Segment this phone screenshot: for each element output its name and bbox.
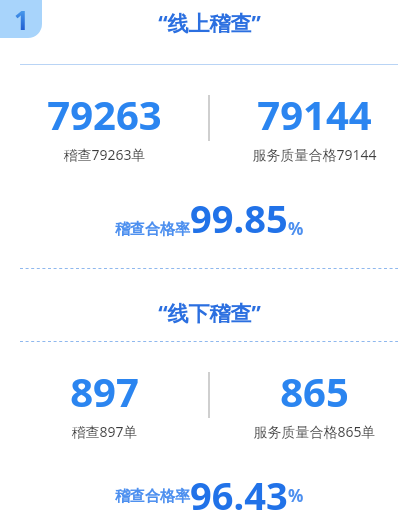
staticText: % — [288, 217, 304, 240]
button[interactable]: Section 1 — [0, 0, 42, 38]
staticText: 897 — [70, 364, 139, 418]
button[interactable]: 79263 — [0, 87, 208, 164]
button[interactable]: 897 — [0, 364, 208, 441]
staticText: % — [288, 484, 304, 507]
staticText: 79263 — [47, 87, 162, 141]
staticText: 稽查897单 — [71, 422, 138, 441]
staticText: “线下稽查” — [158, 299, 261, 328]
button[interactable]: 79144 — [210, 87, 418, 164]
staticText: 服务质量合格865单 — [253, 422, 376, 441]
button[interactable]: 865 — [210, 364, 418, 441]
button[interactable]: 稽查合格率 — [0, 469, 418, 511]
staticText: 96.43 — [190, 469, 288, 511]
staticText: 稽查79263单 — [63, 145, 146, 164]
staticText: 99.85 — [190, 192, 288, 244]
staticText: “线上稽查” — [158, 9, 261, 38]
staticText: 稽查合格率 — [115, 487, 190, 506]
staticText: 服务质量合格79144 — [252, 145, 377, 164]
staticText: 865 — [280, 364, 349, 418]
staticText: 1 — [14, 2, 29, 37]
staticText: 稽查合格率 — [115, 220, 190, 239]
button[interactable]: 稽查合格率 — [0, 192, 418, 244]
staticText: 79144 — [257, 87, 372, 141]
